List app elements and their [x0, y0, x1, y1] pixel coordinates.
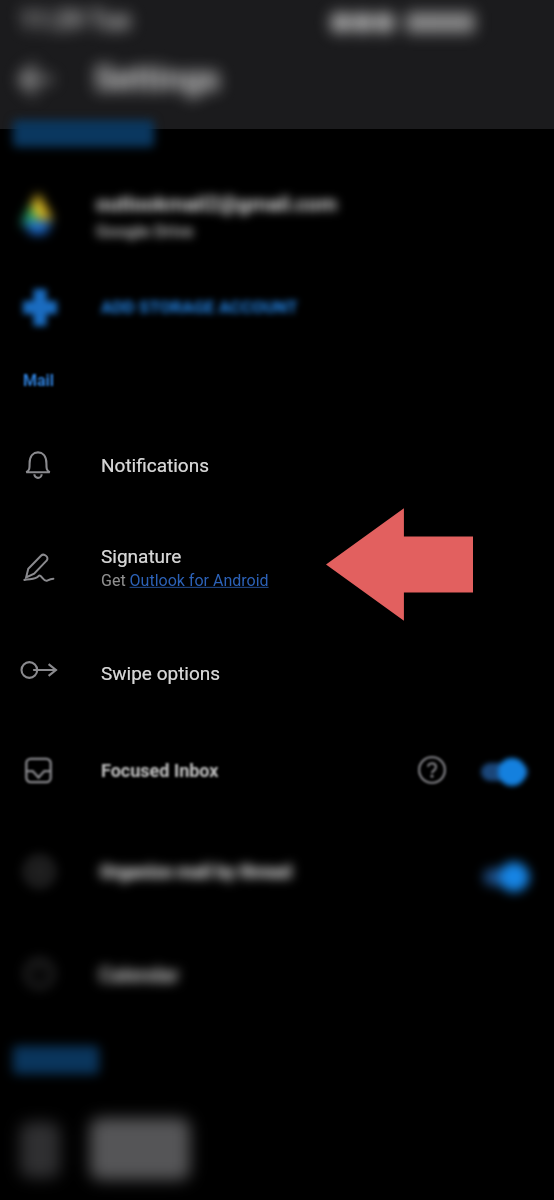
- staticText: Focused Inbox: [101, 760, 219, 781]
- button[interactable]: Signature: [0, 515, 554, 615]
- button[interactable]: outlookmail2@gmail.com: [0, 172, 554, 256]
- staticText: 11:29 Tue: [20, 6, 131, 35]
- staticText: ADD STORAGE ACCOUNT: [101, 297, 298, 317]
- button[interactable]: Toggle: [480, 857, 550, 897]
- staticText: outlookmail2@gmail.com: [96, 192, 338, 217]
- staticText: Mail: [23, 371, 55, 390]
- button[interactable]: Help: [414, 752, 450, 788]
- button[interactable]: Notifications: [0, 415, 554, 515]
- button[interactable]: ADD STORAGE ACCOUNT: [0, 270, 554, 346]
- button[interactable]: Toggle: [478, 752, 548, 792]
- staticText: Calendar: [99, 963, 179, 986]
- staticText: Google Drive: [96, 221, 194, 241]
- staticText: Get Outlook for Android: [101, 571, 269, 590]
- staticText: ●●●: [330, 6, 396, 35]
- staticText: ▮▮▮▮▮: [406, 6, 475, 35]
- button[interactable]: Organize mail by thread: [0, 822, 554, 922]
- button[interactable]: Calendar: [0, 925, 554, 1025]
- button[interactable]: Back: [8, 50, 64, 106]
- staticText: Swipe options: [101, 662, 221, 684]
- button[interactable]: [0, 1100, 554, 1200]
- staticText: Signature: [101, 545, 182, 567]
- staticText: Notifications: [101, 454, 210, 476]
- staticText: Organize mail by thread: [100, 861, 292, 882]
- button[interactable]: Focused Inbox: [0, 720, 554, 820]
- button[interactable]: Swipe options: [0, 620, 554, 720]
- staticText: Settings: [94, 58, 220, 98]
